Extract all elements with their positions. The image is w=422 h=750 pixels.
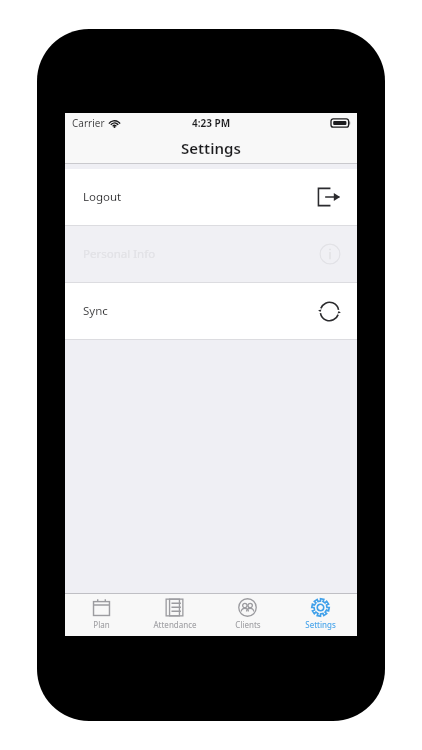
staticText: Clients <box>235 619 261 630</box>
button[interactable]: Settings <box>284 594 357 636</box>
button[interactable]: Logout <box>65 169 357 225</box>
staticText: Carrier <box>72 116 105 130</box>
staticText: Settings <box>181 138 241 158</box>
button[interactable]: Sync <box>65 283 357 339</box>
staticText: Settings <box>305 619 336 630</box>
staticText: Sync <box>83 303 108 319</box>
staticText: Personal Info <box>83 246 156 262</box>
button[interactable]: Attendance <box>138 594 211 636</box>
staticText: 4:23 PM <box>192 116 231 130</box>
staticText: Plan <box>93 619 110 630</box>
staticText: Logout <box>83 189 122 205</box>
staticText: Attendance <box>153 619 197 630</box>
button[interactable]: Plan <box>65 594 138 636</box>
button[interactable]: Clients <box>211 594 284 636</box>
